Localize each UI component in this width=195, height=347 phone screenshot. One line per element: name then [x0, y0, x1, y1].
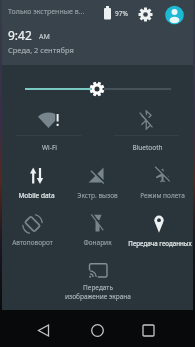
staticText: Фонарик: [83, 238, 112, 247]
staticText: изображение экрана: [65, 292, 131, 301]
button[interactable]: [65, 160, 130, 202]
button[interactable]: [0, 160, 65, 202]
button[interactable]: [130, 208, 195, 250]
staticText: 9:42: [8, 27, 32, 43]
staticText: 97%: [115, 9, 128, 18]
staticText: Среда, 2 сентября: [8, 45, 74, 55]
button[interactable]: [136, 318, 162, 344]
staticText: Mobile data: [18, 191, 55, 200]
button[interactable]: [65, 208, 130, 250]
staticText: Режим полета: [140, 191, 185, 200]
staticText: Передать: [83, 283, 113, 292]
staticText: Bluetooth: [132, 143, 163, 152]
button[interactable]: [98, 103, 195, 158]
staticText: Передача геоданных: [128, 239, 192, 247]
staticText: AM: [39, 32, 50, 42]
button[interactable]: [84, 318, 110, 344]
button[interactable]: [0, 103, 98, 158]
button[interactable]: [165, 5, 185, 25]
button[interactable]: [130, 160, 195, 202]
button[interactable]: [32, 318, 58, 344]
staticText: Автоповорот: [12, 238, 53, 247]
button[interactable]: [0, 208, 65, 250]
staticText: Только экстренные в...: [8, 7, 85, 17]
staticText: Экстр. вызов: [77, 191, 118, 200]
button[interactable]: [55, 255, 140, 303]
staticText: Wi-Fi: [42, 143, 57, 152]
button[interactable]: [138, 7, 153, 22]
button[interactable]: [20, 80, 176, 98]
